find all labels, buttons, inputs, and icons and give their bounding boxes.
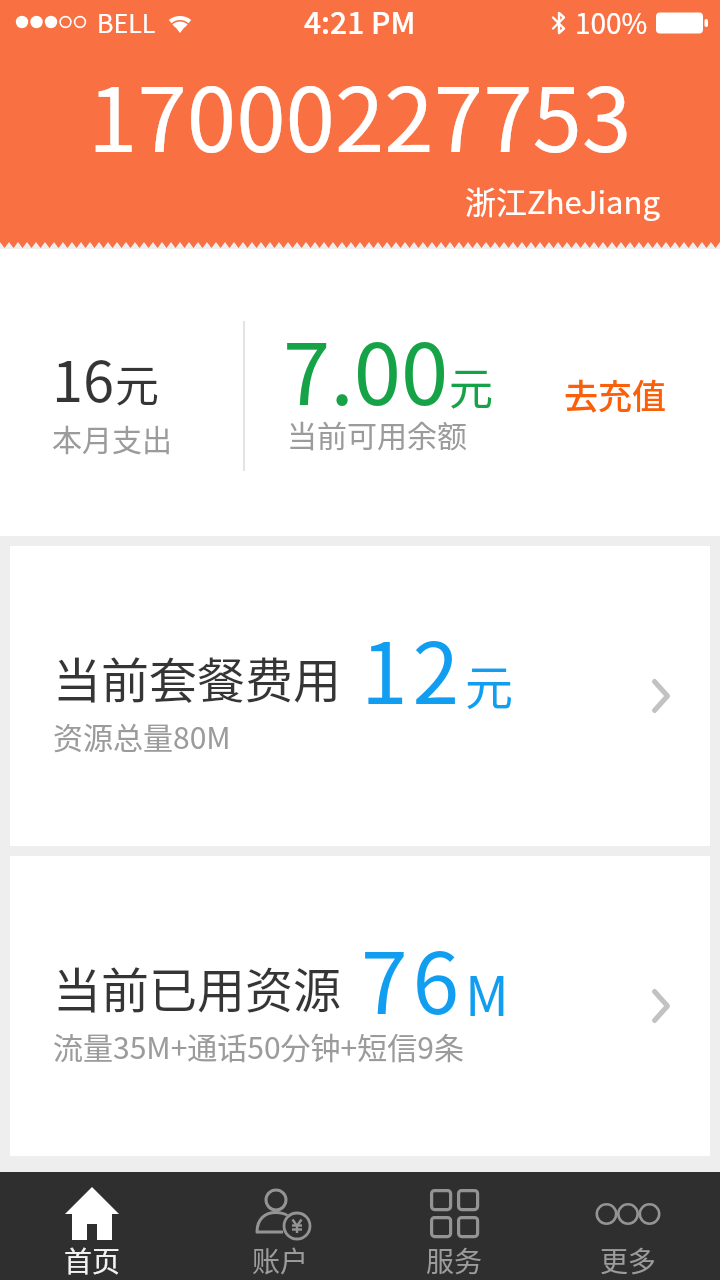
button[interactable]: 账户 bbox=[180, 1172, 360, 1280]
staticText: 元 bbox=[449, 354, 493, 418]
staticText: BELL bbox=[97, 4, 156, 40]
staticText: 当前可用余额 bbox=[287, 412, 467, 455]
staticText: 7.00 bbox=[283, 306, 449, 429]
button[interactable]: 首页 bbox=[0, 1172, 180, 1280]
staticText: 17000227753 bbox=[88, 49, 632, 178]
staticText: 服务 bbox=[426, 1240, 483, 1280]
staticText: 浙江ZheJiang bbox=[465, 178, 660, 223]
staticText: 资源总量80M bbox=[53, 714, 231, 757]
staticText: 元 bbox=[115, 351, 159, 415]
staticText: 流量35M+通话50分钟+短信9条 bbox=[53, 1024, 464, 1067]
staticText: 当前已用资源 bbox=[53, 952, 342, 1022]
staticText: 12 bbox=[361, 607, 465, 729]
staticText: 本月支出 bbox=[52, 416, 172, 459]
staticText: 100% bbox=[575, 2, 648, 43]
staticText: 76 bbox=[361, 917, 465, 1039]
button[interactable]: 当前已用资源 bbox=[10, 856, 710, 1156]
button[interactable]: 当前套餐费用 bbox=[10, 546, 710, 846]
staticText: 元 bbox=[465, 649, 514, 719]
staticText: M bbox=[465, 953, 509, 1031]
staticText: 账户 bbox=[252, 1240, 309, 1280]
staticText: 当前套餐费用 bbox=[53, 642, 342, 712]
staticText: 4:21 PM bbox=[304, 0, 416, 42]
staticText: 16 bbox=[52, 337, 115, 418]
button[interactable]: 去充值 bbox=[564, 370, 666, 419]
button[interactable]: 服务 bbox=[360, 1172, 540, 1280]
staticText: 首页 bbox=[64, 1240, 121, 1280]
button[interactable]: 更多 bbox=[540, 1172, 720, 1280]
staticText: 更多 bbox=[600, 1240, 657, 1280]
